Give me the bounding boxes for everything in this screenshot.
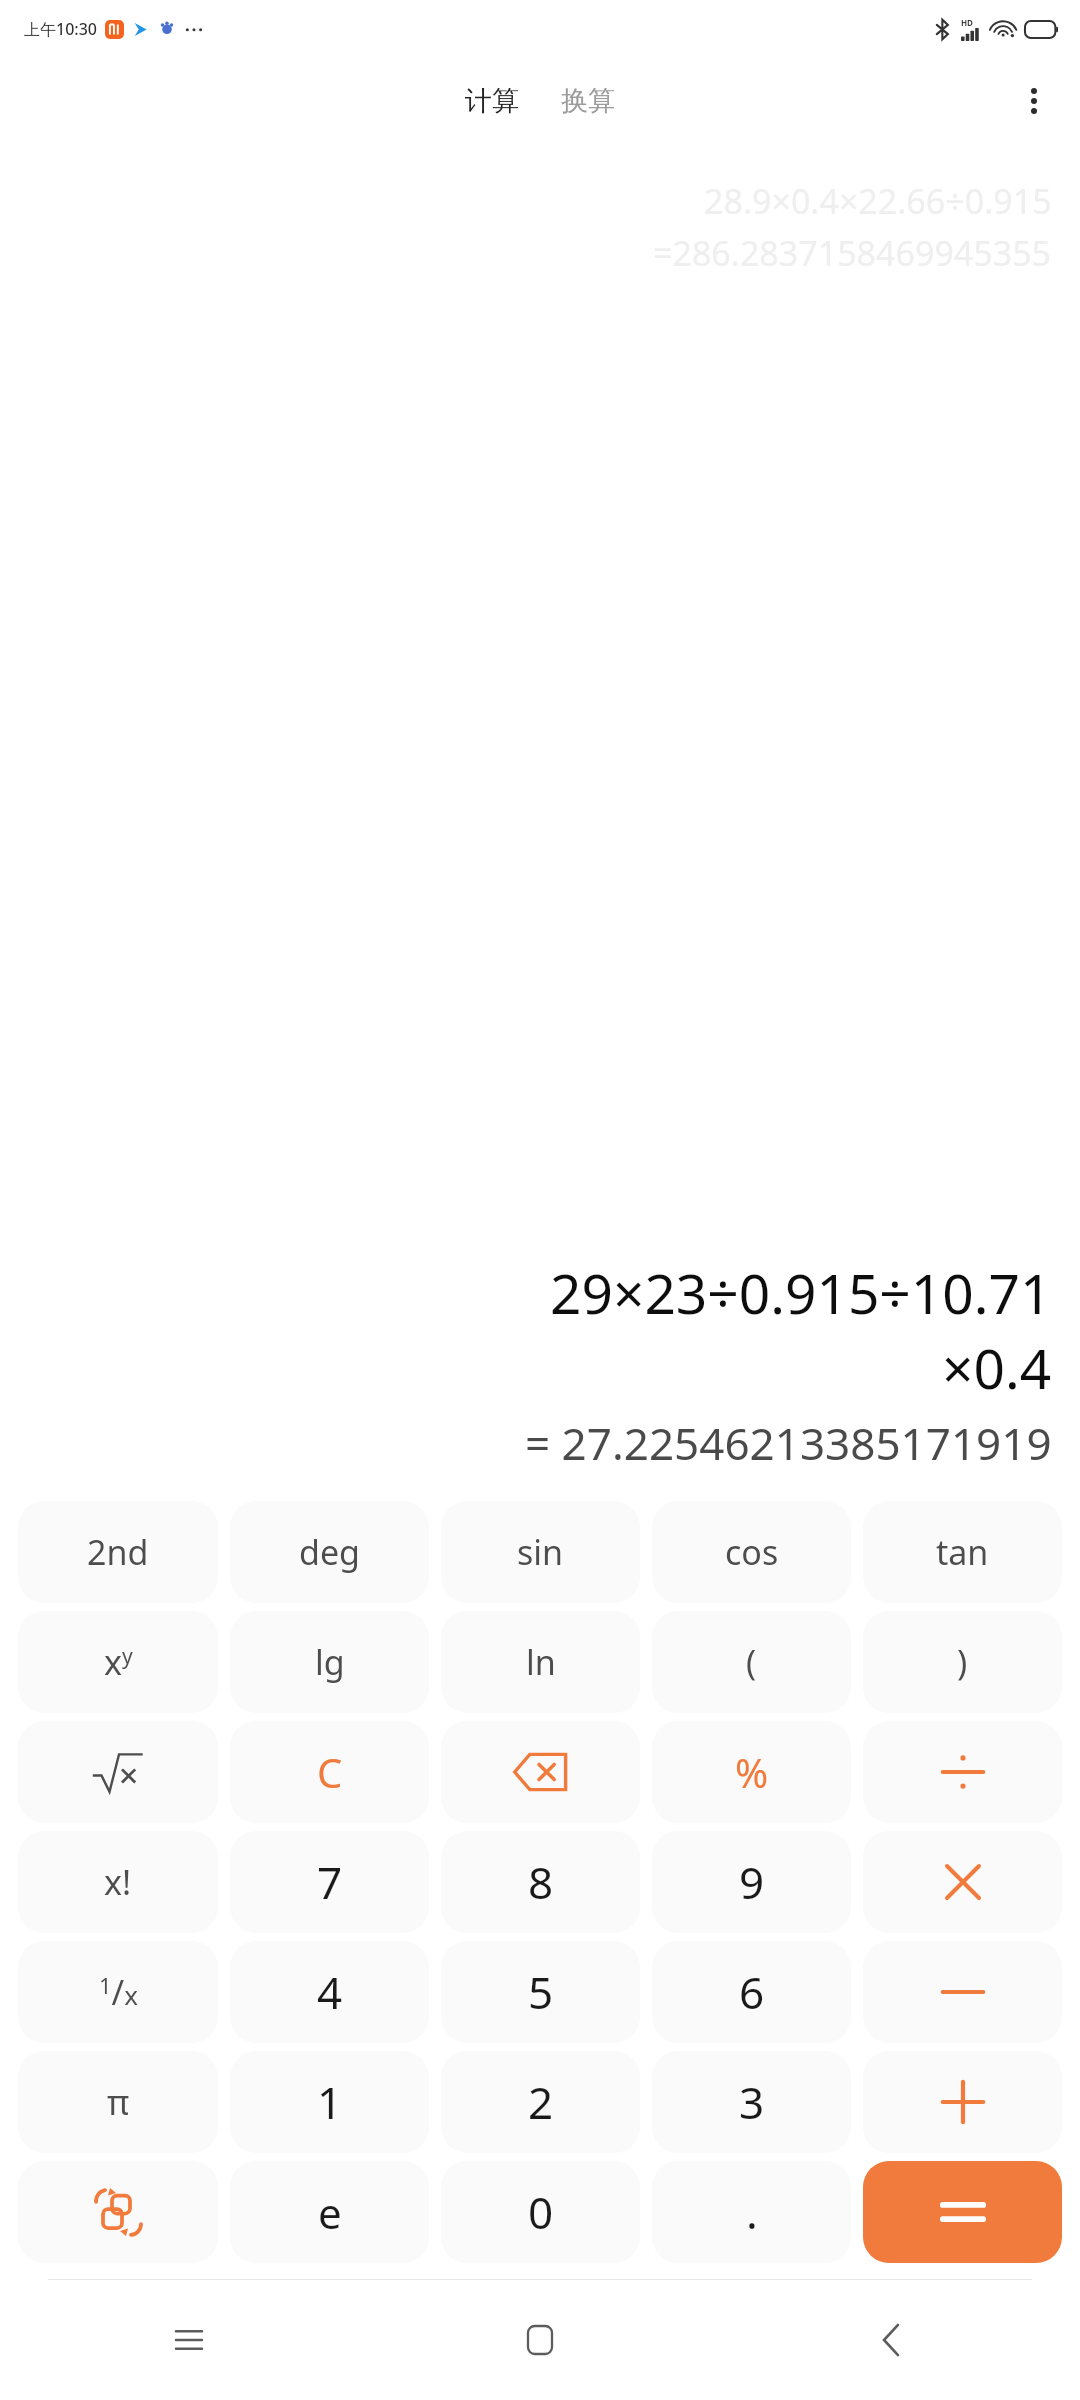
staticText: 4 (317, 1962, 343, 2022)
button[interactable]: Plus (863, 2051, 1062, 2153)
staticText: ×0.4 (942, 1330, 1052, 1405)
button[interactable]: Home (504, 2304, 576, 2376)
staticText: 0 (528, 2182, 554, 2242)
staticText: 2 (528, 2072, 554, 2132)
staticText: 换算 (561, 84, 615, 118)
button[interactable]: 7 (230, 1831, 429, 1933)
button[interactable]: 2nd (18, 1501, 218, 1603)
button[interactable]: 换算 (553, 78, 623, 124)
button[interactable]: Convert (18, 2161, 218, 2263)
staticText: ln (526, 1639, 556, 1685)
button[interactable]: cos (652, 1501, 851, 1603)
staticText: 28.9×0.4×22.66÷0.915 (704, 178, 1052, 224)
staticText: HD (961, 17, 973, 28)
button[interactable]: 1 (230, 2051, 429, 2153)
staticText: =286.2837158469945355 (653, 230, 1052, 276)
button[interactable]: Equals (863, 2161, 1062, 2263)
staticText: . (746, 2182, 758, 2242)
staticText: π (107, 2079, 130, 2125)
button[interactable]: Multiply (863, 1831, 1062, 1933)
button[interactable]: 3 (652, 2051, 851, 2153)
staticText: 6 (739, 1962, 765, 2022)
staticText: ( (746, 1639, 757, 1685)
staticText: 上午10:30 (24, 18, 97, 40)
staticText: 计算 (465, 84, 519, 118)
staticText: deg (299, 1529, 360, 1575)
staticText: 8 (528, 1852, 554, 1912)
button[interactable]: . (652, 2161, 851, 2263)
button[interactable]: 4 (230, 1941, 429, 2043)
staticText: 2nd (87, 1529, 149, 1575)
button[interactable]: xy (18, 1611, 218, 1713)
button[interactable]: ln (441, 1611, 640, 1713)
button[interactable]: ( (652, 1611, 851, 1713)
button[interactable]: tan (863, 1501, 1062, 1603)
staticText: 1 (317, 2072, 343, 2132)
staticText: 1/x (99, 1969, 138, 2015)
button[interactable]: sin (441, 1501, 640, 1603)
staticText: lg (315, 1639, 345, 1685)
button[interactable]: % (652, 1721, 851, 1823)
button[interactable]: Backspace (441, 1721, 640, 1823)
button[interactable]: 1/x (18, 1941, 218, 2043)
button[interactable]: Divide (863, 1721, 1062, 1823)
staticText: x! (104, 1859, 132, 1905)
button[interactable]: 8 (441, 1831, 640, 1933)
staticText: 3 (739, 2072, 765, 2132)
staticText: 29×23÷0.915÷10.71 (550, 1255, 1052, 1330)
staticText: 9 (739, 1852, 765, 1912)
button[interactable]: 2 (441, 2051, 640, 2153)
staticText: C (317, 1745, 343, 1799)
staticText: 5 (528, 1962, 554, 2022)
button[interactable]: Minus (863, 1941, 1062, 2043)
button[interactable]: x! (18, 1831, 218, 1933)
button[interactable]: 9 (652, 1831, 851, 1933)
button[interactable]: deg (230, 1501, 429, 1603)
staticText: = 27.22546213385171919 (525, 1413, 1052, 1473)
button[interactable]: Square root (18, 1721, 218, 1823)
button[interactable]: 0 (441, 2161, 640, 2263)
staticText: % (735, 1745, 769, 1799)
staticText: 7 (317, 1852, 343, 1912)
staticText: e (318, 2184, 342, 2241)
button[interactable]: e (230, 2161, 429, 2263)
button[interactable]: C (230, 1721, 429, 1823)
staticText: cos (725, 1529, 779, 1575)
staticText: ) (957, 1639, 968, 1685)
staticText: tan (936, 1529, 989, 1575)
button[interactable]: More options (1010, 77, 1058, 125)
button[interactable]: Back (855, 2304, 927, 2376)
button[interactable]: Recents (153, 2304, 225, 2376)
button[interactable]: 计算 (457, 78, 527, 124)
button[interactable]: π (18, 2051, 218, 2153)
staticText: sin (517, 1529, 564, 1575)
button[interactable]: 6 (652, 1941, 851, 2043)
button[interactable]: 5 (441, 1941, 640, 2043)
staticText: xy (104, 1639, 133, 1685)
button[interactable]: ) (863, 1611, 1062, 1713)
button[interactable]: lg (230, 1611, 429, 1713)
